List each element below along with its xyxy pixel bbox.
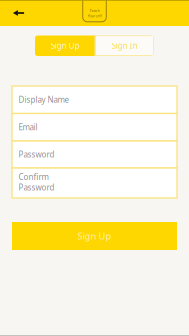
button[interactable]: Back <box>5 0 31 26</box>
button[interactable]: Sign Up <box>35 35 95 56</box>
staticText: Sign In <box>111 40 137 51</box>
staticText: Sign Up <box>50 40 79 51</box>
button[interactable]: Sign In <box>95 35 154 56</box>
button[interactable]: Email <box>12 113 177 141</box>
staticText: Email <box>18 122 37 132</box>
staticText: Confirm Password <box>18 172 54 193</box>
staticText: Display Name <box>18 94 69 105</box>
staticText: Sign Up <box>77 230 111 242</box>
button[interactable]: Confirm Password <box>12 168 177 198</box>
staticText: Password <box>18 149 54 160</box>
button[interactable]: Sign Up <box>12 222 177 250</box>
staticText: Yourself <box>87 13 101 18</box>
button[interactable]: Password <box>12 141 177 168</box>
staticText: Teach <box>89 8 99 13</box>
button[interactable]: Display Name <box>12 86 177 113</box>
